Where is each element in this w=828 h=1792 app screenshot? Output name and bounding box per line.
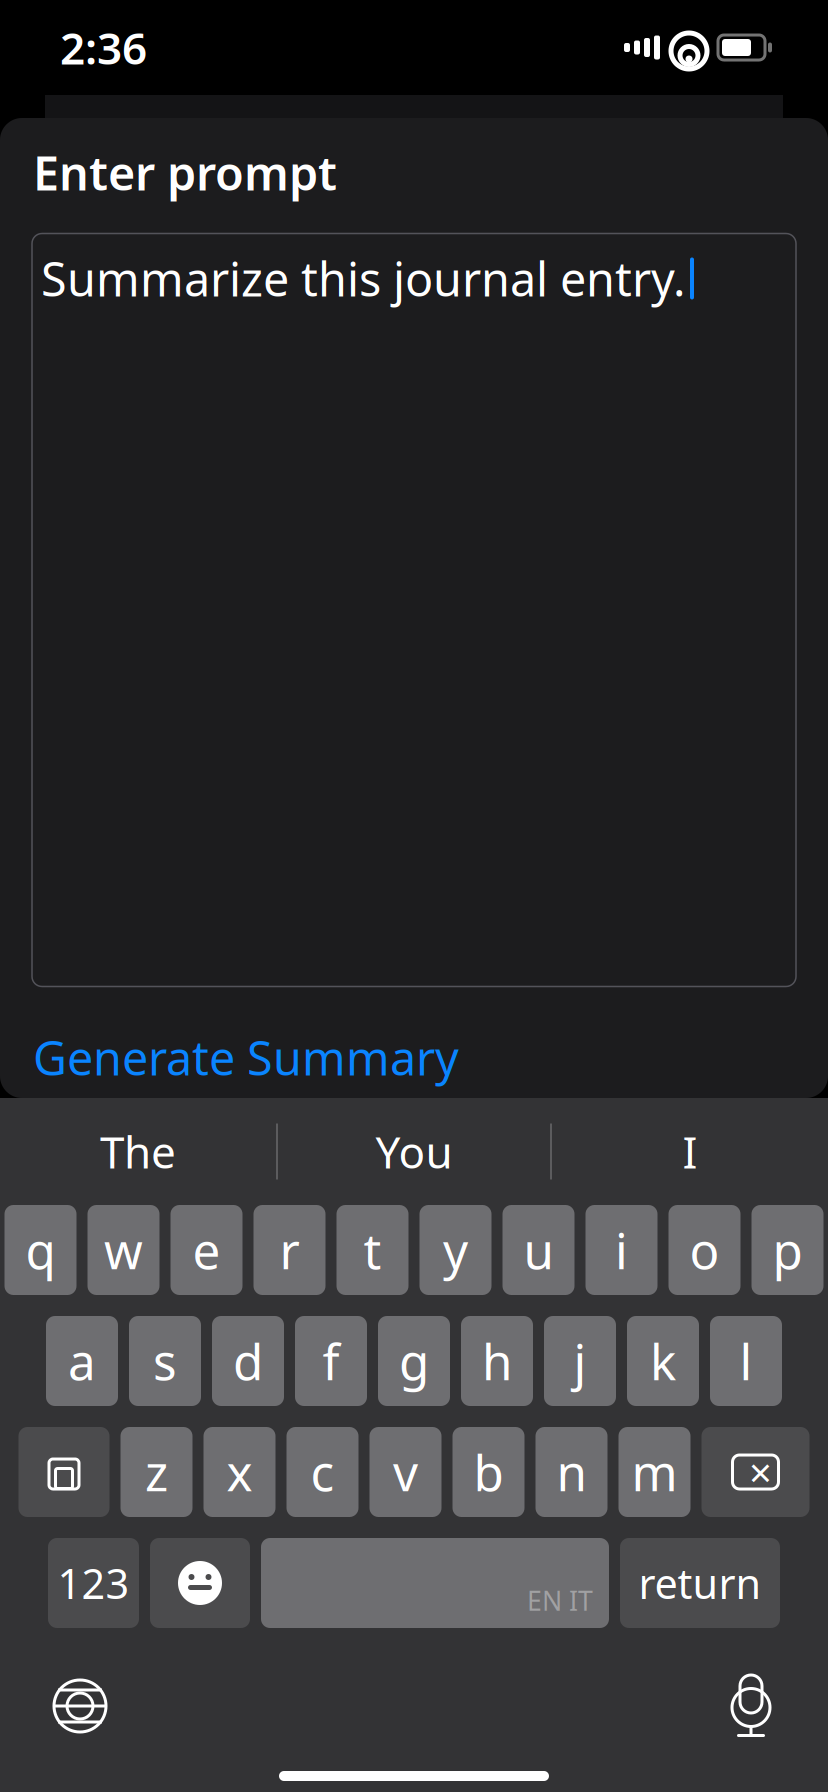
button[interactable]: return bbox=[620, 1538, 780, 1628]
button[interactable]: space bbox=[261, 1538, 609, 1628]
button[interactable]: p bbox=[751, 1205, 823, 1295]
staticText: i bbox=[615, 1217, 628, 1283]
button[interactable]: o bbox=[668, 1205, 740, 1295]
button[interactable]: w bbox=[87, 1205, 159, 1295]
button[interactable]: c bbox=[286, 1427, 358, 1517]
button[interactable]: d bbox=[212, 1316, 284, 1406]
staticText: return bbox=[638, 1556, 761, 1610]
button[interactable]: Delete bbox=[701, 1427, 809, 1517]
button[interactable]: The bbox=[0, 1103, 276, 1199]
staticText: 123 bbox=[57, 1556, 129, 1610]
staticText: You bbox=[375, 1122, 452, 1181]
button[interactable]: q bbox=[4, 1205, 76, 1295]
staticText: Enter prompt bbox=[33, 141, 337, 203]
button[interactable]: e bbox=[170, 1205, 242, 1295]
staticText: o bbox=[689, 1217, 719, 1283]
staticText: b bbox=[473, 1439, 503, 1505]
staticText: × bbox=[749, 1445, 772, 1498]
button[interactable]: Dictation bbox=[730, 1674, 772, 1738]
button[interactable]: j bbox=[544, 1316, 616, 1406]
staticText: Generate Summary bbox=[33, 1026, 459, 1088]
staticText: r bbox=[279, 1217, 299, 1283]
staticText: 2:36 bbox=[60, 18, 147, 77]
button[interactable]: Emoji bbox=[150, 1538, 250, 1628]
staticText: a bbox=[68, 1328, 96, 1394]
staticText: x bbox=[226, 1439, 252, 1505]
button[interactable]: 123 bbox=[48, 1538, 139, 1628]
staticText: The bbox=[100, 1122, 176, 1181]
button[interactable]: g bbox=[378, 1316, 450, 1406]
button[interactable]: b bbox=[452, 1427, 524, 1517]
button[interactable]: l bbox=[710, 1316, 782, 1406]
staticText: h bbox=[482, 1328, 512, 1394]
button[interactable]: k bbox=[627, 1316, 699, 1406]
staticText: g bbox=[399, 1328, 429, 1394]
staticText: w bbox=[104, 1217, 143, 1283]
button[interactable]: Next keyboard bbox=[52, 1678, 108, 1734]
staticText: t bbox=[363, 1217, 381, 1283]
button[interactable]: Generate Summary bbox=[0, 1008, 492, 1106]
staticText: e bbox=[192, 1217, 220, 1283]
button[interactable]: You bbox=[278, 1103, 550, 1199]
staticText: EN IT bbox=[527, 1583, 593, 1618]
button[interactable]: n bbox=[535, 1427, 607, 1517]
button[interactable]: f bbox=[295, 1316, 367, 1406]
staticText: u bbox=[523, 1217, 553, 1283]
staticText: q bbox=[25, 1217, 55, 1283]
staticText: I bbox=[682, 1122, 697, 1181]
staticText: z bbox=[145, 1439, 168, 1505]
staticText: d bbox=[233, 1328, 263, 1394]
staticText: m bbox=[631, 1439, 677, 1505]
button[interactable]: v bbox=[369, 1427, 441, 1517]
staticText: Summarize this journal entry. bbox=[41, 247, 686, 309]
staticText: k bbox=[650, 1328, 676, 1394]
button[interactable]: I bbox=[552, 1103, 828, 1199]
staticText: s bbox=[153, 1328, 177, 1394]
button[interactable]: u bbox=[502, 1205, 574, 1295]
button[interactable]: h bbox=[461, 1316, 533, 1406]
staticText: y bbox=[443, 1217, 468, 1283]
button[interactable]: m bbox=[618, 1427, 690, 1517]
button[interactable]: s bbox=[129, 1316, 201, 1406]
button[interactable]: i bbox=[585, 1205, 657, 1295]
button[interactable]: y bbox=[419, 1205, 491, 1295]
button[interactable]: z bbox=[120, 1427, 192, 1517]
staticText: f bbox=[322, 1328, 339, 1394]
button[interactable]: a bbox=[46, 1316, 118, 1406]
staticText: p bbox=[772, 1217, 802, 1283]
staticText: l bbox=[739, 1328, 752, 1394]
button[interactable]: r bbox=[253, 1205, 325, 1295]
button[interactable]: x bbox=[203, 1427, 275, 1517]
button[interactable]: Shift bbox=[18, 1427, 109, 1517]
staticText: n bbox=[556, 1439, 586, 1505]
staticText: c bbox=[310, 1439, 334, 1505]
button[interactable]: t bbox=[336, 1205, 408, 1295]
staticText: v bbox=[393, 1439, 418, 1505]
staticText: j bbox=[573, 1328, 586, 1394]
